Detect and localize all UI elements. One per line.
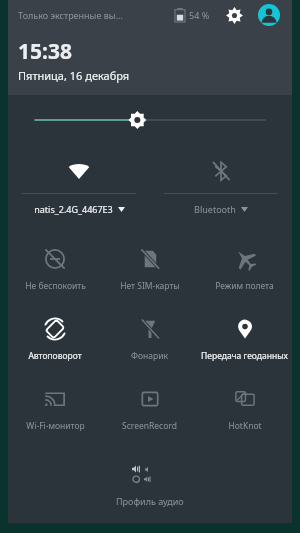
staticText: Передача геоданных xyxy=(201,350,288,362)
button[interactable]: Bluetooth xyxy=(150,145,292,223)
staticText: Не беспокоить xyxy=(25,280,86,292)
staticText: 15:38 xyxy=(18,37,72,66)
button[interactable]: Wi-Fi xyxy=(8,145,150,223)
button[interactable]: Settings xyxy=(222,3,246,27)
button[interactable]: Режим полета xyxy=(197,235,292,305)
staticText: Bluetooth xyxy=(194,203,236,215)
button[interactable]: Фонарик xyxy=(102,305,197,375)
button[interactable]: Brightness xyxy=(8,95,292,145)
staticText: Wi-Fi-монитор xyxy=(26,420,85,432)
button[interactable]: Нет SIM-карты xyxy=(102,235,197,305)
staticText: 54 % xyxy=(189,9,210,21)
staticText: HotKnot xyxy=(228,420,262,432)
button[interactable]: ScreenRecord xyxy=(102,375,197,445)
staticText: Пятница, 16 декабря xyxy=(18,68,130,83)
staticText: Профиль аудио xyxy=(116,495,184,507)
button[interactable]: Передача геоданных xyxy=(197,305,292,375)
staticText: natis_2.4G_4467E3 xyxy=(34,203,113,215)
button[interactable]: User profile xyxy=(256,2,282,28)
button[interactable]: Wi-Fi-монитор xyxy=(8,375,102,445)
staticText: Автоповорот xyxy=(28,350,82,362)
staticText: Только экстренные вы… xyxy=(18,9,123,21)
staticText: Фонарик xyxy=(131,350,168,362)
staticText: ScreenRecord xyxy=(122,420,177,432)
button[interactable]: Audio profile xyxy=(8,464,292,507)
button[interactable]: HotKnot xyxy=(197,375,292,445)
button[interactable]: Автоповорот xyxy=(8,305,102,375)
button[interactable]: Не беспокоить xyxy=(8,235,102,305)
staticText: Режим полета xyxy=(215,280,274,292)
staticText: Нет SIM-карты xyxy=(120,280,180,292)
